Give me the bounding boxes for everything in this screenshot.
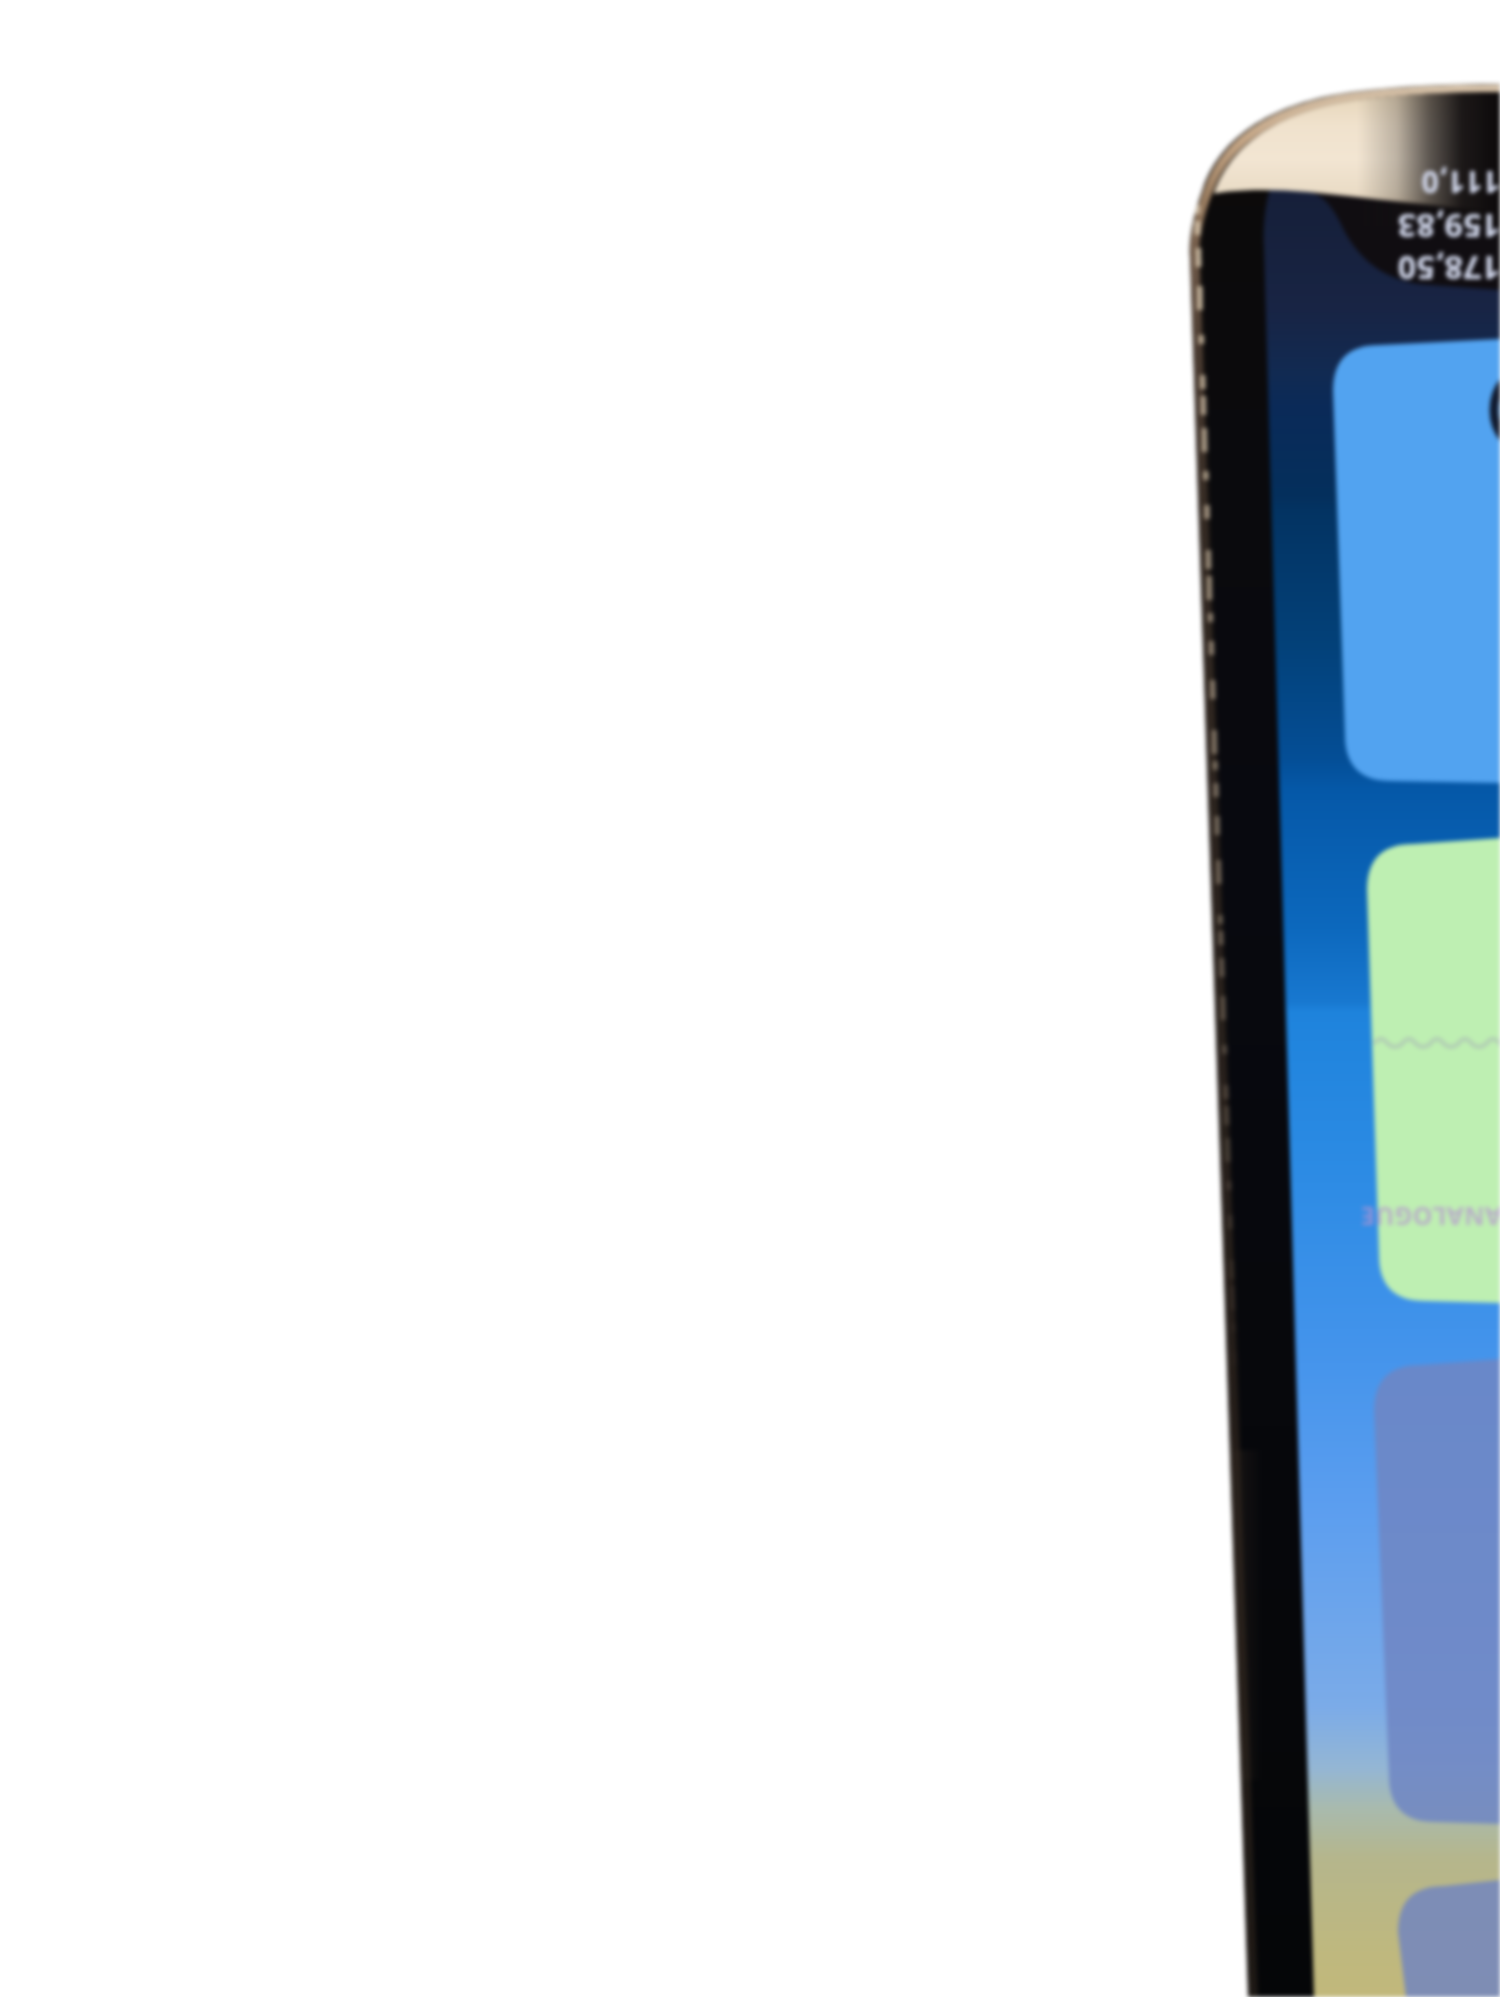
- button[interactable]: Activity card: [1367, 844, 1500, 1301]
- button[interactable]: Balance card: [1333, 345, 1500, 781]
- button[interactable]: Phone showing a dashboard app: [0, 0, 1500, 1997]
- button[interactable]: More card: [1398, 1886, 1500, 1997]
- button[interactable]: Spending card: [1374, 1365, 1500, 1822]
